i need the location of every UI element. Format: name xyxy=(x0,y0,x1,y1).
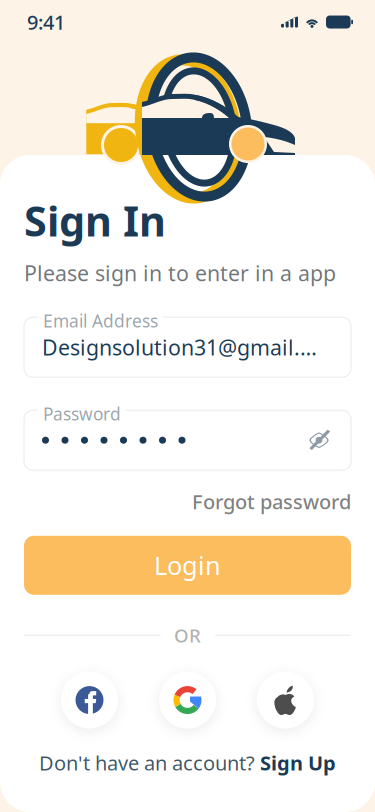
staticText: Email Address xyxy=(43,309,158,332)
staticText: 9:41 xyxy=(27,9,65,35)
button[interactable]: Show password xyxy=(305,428,333,453)
staticText: Forgot password xyxy=(192,488,351,515)
button[interactable]: Forgot password xyxy=(192,488,351,515)
button[interactable]: Sign in with Facebook xyxy=(61,672,118,729)
staticText: Designsolution31@gmail.com xyxy=(42,333,325,361)
staticText: Login xyxy=(154,548,221,582)
button[interactable]: Sign Up xyxy=(260,749,336,776)
staticText: OR xyxy=(174,623,201,648)
button[interactable]: Sign in with Google xyxy=(159,672,216,729)
staticText: Password xyxy=(43,402,121,425)
staticText: Sign Up xyxy=(260,749,336,776)
staticText: Sign In xyxy=(24,193,166,248)
staticText: Please sign in to enter in a app xyxy=(24,259,336,287)
staticText: Don't have an account? xyxy=(39,749,255,776)
button[interactable]: Login xyxy=(24,536,351,595)
button[interactable]: Sign in with Apple xyxy=(257,672,314,729)
